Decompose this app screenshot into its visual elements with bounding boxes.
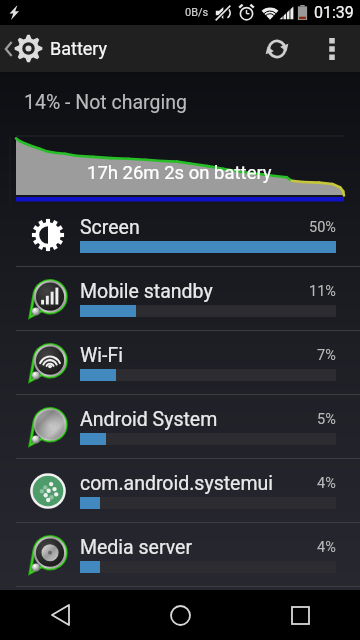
- staticText: Android System: [80, 408, 218, 431]
- staticText: 5%: [317, 411, 336, 428]
- staticText: 17h 26m 2s on battery: [87, 162, 272, 184]
- staticText: 4%: [317, 539, 336, 556]
- staticText: 0B/s: [185, 6, 209, 19]
- staticText: Mobile standby: [80, 280, 213, 303]
- button[interactable]: Android System: [0, 395, 360, 459]
- button[interactable]: Media server: [0, 523, 360, 587]
- button[interactable]: Refresh: [250, 25, 304, 72]
- button[interactable]: Mobile standby: [0, 267, 360, 331]
- staticText: 14% - Not charging: [24, 91, 187, 114]
- staticText: Screen: [80, 216, 140, 239]
- button[interactable]: More options: [304, 25, 360, 72]
- button[interactable]: Screen: [0, 203, 360, 267]
- button[interactable]: Navigate up: [0, 25, 360, 72]
- staticText: Media server: [80, 536, 193, 559]
- staticText: 01:39: [314, 3, 354, 22]
- staticText: 11%: [309, 283, 336, 300]
- button[interactable]: Back: [0, 590, 120, 640]
- staticText: 7%: [317, 347, 336, 364]
- button[interactable]: com.android.systemui: [0, 459, 360, 523]
- staticText: Wi-Fi: [80, 344, 123, 367]
- staticText: Battery: [50, 38, 108, 59]
- button[interactable]: Wi-Fi: [0, 331, 360, 395]
- staticText: 4%: [317, 475, 336, 492]
- button[interactable]: Recent apps: [240, 590, 360, 640]
- staticText: com.android.systemui: [80, 472, 274, 495]
- staticText: 50%: [309, 219, 336, 236]
- button[interactable]: Home: [120, 590, 240, 640]
